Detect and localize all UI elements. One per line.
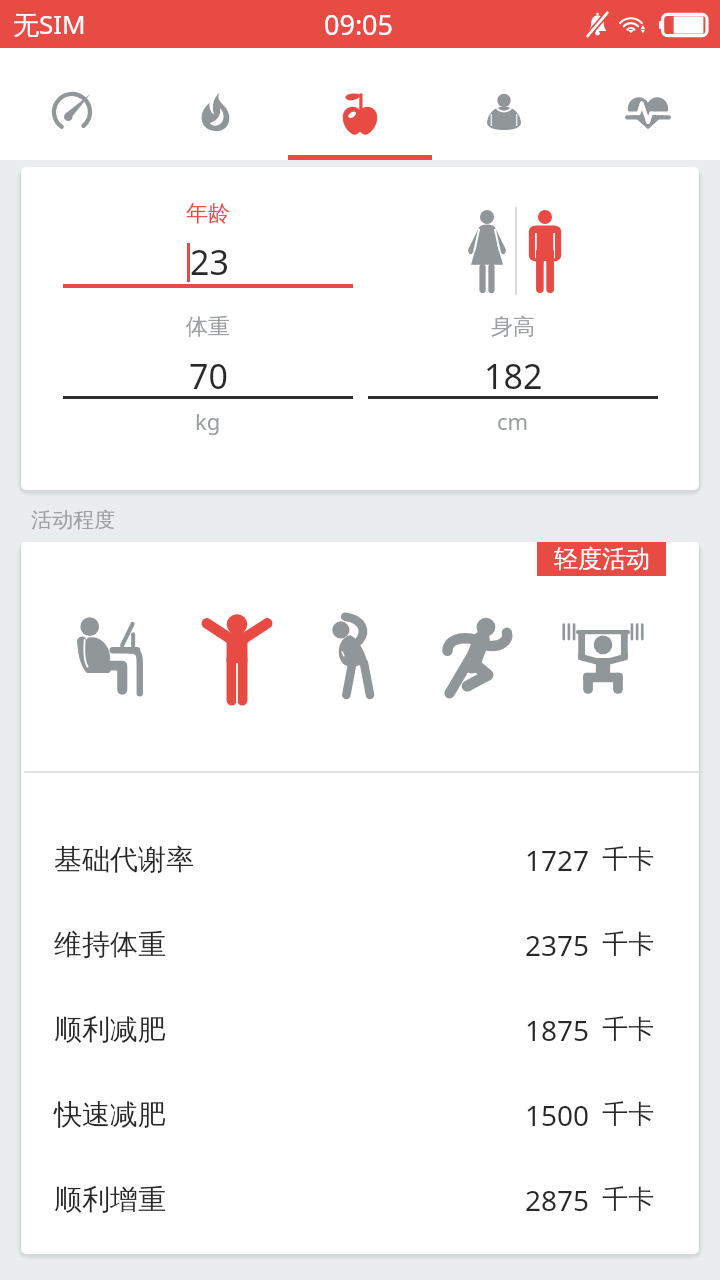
button[interactable]: Calories burned [144, 48, 288, 160]
button[interactable]: 顺利减肥 [21, 987, 699, 1072]
button[interactable]: Activity level 2 [176, 599, 298, 717]
staticText: 快速减肥 [54, 1097, 166, 1132]
staticText: 23 [190, 239, 229, 285]
staticText: 基础代谢率 [54, 842, 194, 877]
button[interactable]: Activity level 1 [54, 599, 176, 717]
button[interactable]: Male [517, 204, 573, 298]
staticText: 体重 [186, 313, 230, 341]
button[interactable]: 维持体重 [21, 902, 699, 987]
staticText: 2875 [525, 1181, 590, 1219]
staticText: kg [195, 406, 221, 436]
button[interactable]: Activity level 5 [542, 599, 664, 717]
staticText: 顺利减肥 [54, 1012, 166, 1047]
staticText: 千卡 [602, 1183, 654, 1216]
button[interactable]: 基础代谢率 [21, 817, 699, 902]
button[interactable]: Heart rate [576, 48, 720, 160]
staticText: 身高 [491, 313, 535, 341]
staticText: 轻度活动 [554, 544, 650, 574]
button[interactable]: 顺利增重 [21, 1157, 699, 1242]
staticText: 年龄 [186, 200, 230, 228]
button[interactable]: 轻度活动 [537, 542, 666, 576]
staticText: 无SIM [13, 6, 86, 42]
staticText: cm [497, 406, 529, 436]
button[interactable]: Dashboard [0, 48, 144, 160]
button[interactable]: Female [459, 204, 515, 298]
staticText: 维持体重 [54, 927, 166, 962]
staticText: 182 [484, 353, 543, 399]
staticText: 1875 [525, 1011, 590, 1049]
staticText: 千卡 [602, 1013, 654, 1046]
staticText: 09:05 [324, 6, 394, 43]
staticText: 2375 [525, 926, 590, 964]
button[interactable]: Profile [432, 48, 576, 160]
button[interactable]: Activity level 3 [298, 599, 420, 717]
button[interactable]: Nutrition [288, 48, 432, 160]
staticText: 1727 [525, 841, 590, 879]
staticText: 千卡 [602, 843, 654, 876]
button[interactable]: Activity level 4 [420, 599, 542, 717]
staticText: 70 [189, 353, 228, 399]
staticText: 顺利增重 [54, 1182, 166, 1217]
staticText: 1500 [525, 1096, 590, 1134]
staticText: 活动程度 [31, 507, 115, 533]
staticText: 千卡 [602, 928, 654, 961]
staticText: 千卡 [602, 1098, 654, 1131]
button[interactable]: 快速减肥 [21, 1072, 699, 1157]
